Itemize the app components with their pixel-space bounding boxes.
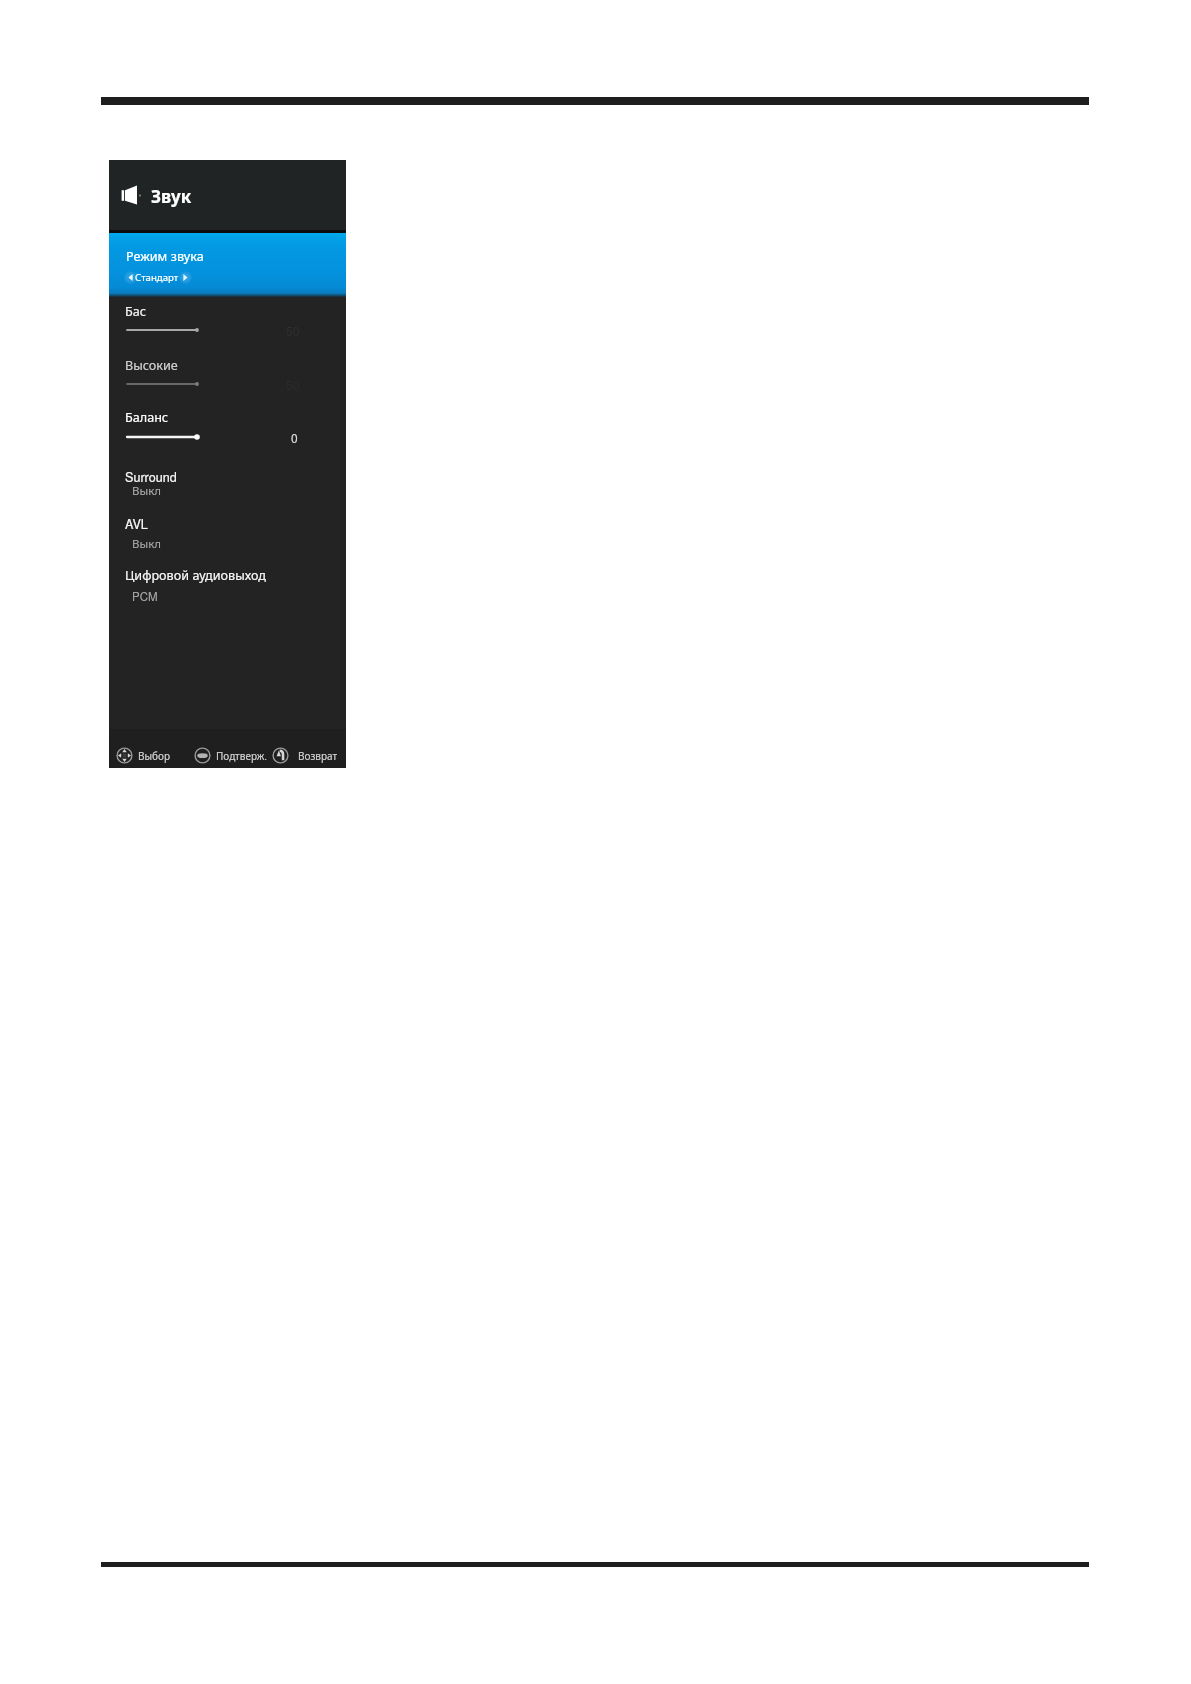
staticText: Выкл — [132, 483, 162, 499]
button[interactable]: Высокие — [125, 357, 225, 374]
button[interactable]: Баланс — [125, 409, 225, 426]
staticText: Бас — [125, 303, 146, 320]
button[interactable]: AVL — [125, 515, 325, 532]
button[interactable]: Next sound mode — [183, 273, 188, 282]
other: Выбор — [116, 747, 133, 764]
button[interactable]: Цифровой аудиовыход — [125, 566, 325, 583]
other: Подтверж. — [194, 747, 211, 764]
staticText: Цифровой аудиовыход — [125, 566, 266, 583]
staticText: Возврат — [298, 749, 338, 763]
button[interactable]: Звук — [109, 160, 346, 232]
button[interactable]: Подтверж. — [194, 747, 268, 764]
staticText: Режим звука — [126, 247, 204, 265]
staticText: AVL — [125, 515, 148, 532]
staticText: 0 — [291, 429, 298, 446]
button[interactable]: Previous sound mode — [128, 273, 133, 282]
staticText: Подтверж. — [216, 749, 268, 763]
staticText: Surround — [125, 468, 177, 485]
staticText: Выбор — [138, 749, 171, 763]
staticText: 50 — [286, 322, 300, 339]
staticText: PCM — [132, 588, 158, 604]
staticText: Высокие — [125, 357, 178, 374]
other: Возврат — [272, 747, 289, 764]
button[interactable]: Surround — [125, 468, 325, 485]
staticText: Стандарт — [135, 271, 179, 284]
button[interactable]: Возврат — [272, 747, 338, 764]
button[interactable]: Бас — [125, 303, 225, 320]
button[interactable]: Режим звука — [109, 233, 346, 297]
staticText: Баланс — [125, 409, 169, 426]
staticText: Выкл — [132, 536, 162, 552]
button[interactable]: Выбор — [116, 747, 171, 764]
staticText: Звук — [151, 185, 192, 208]
